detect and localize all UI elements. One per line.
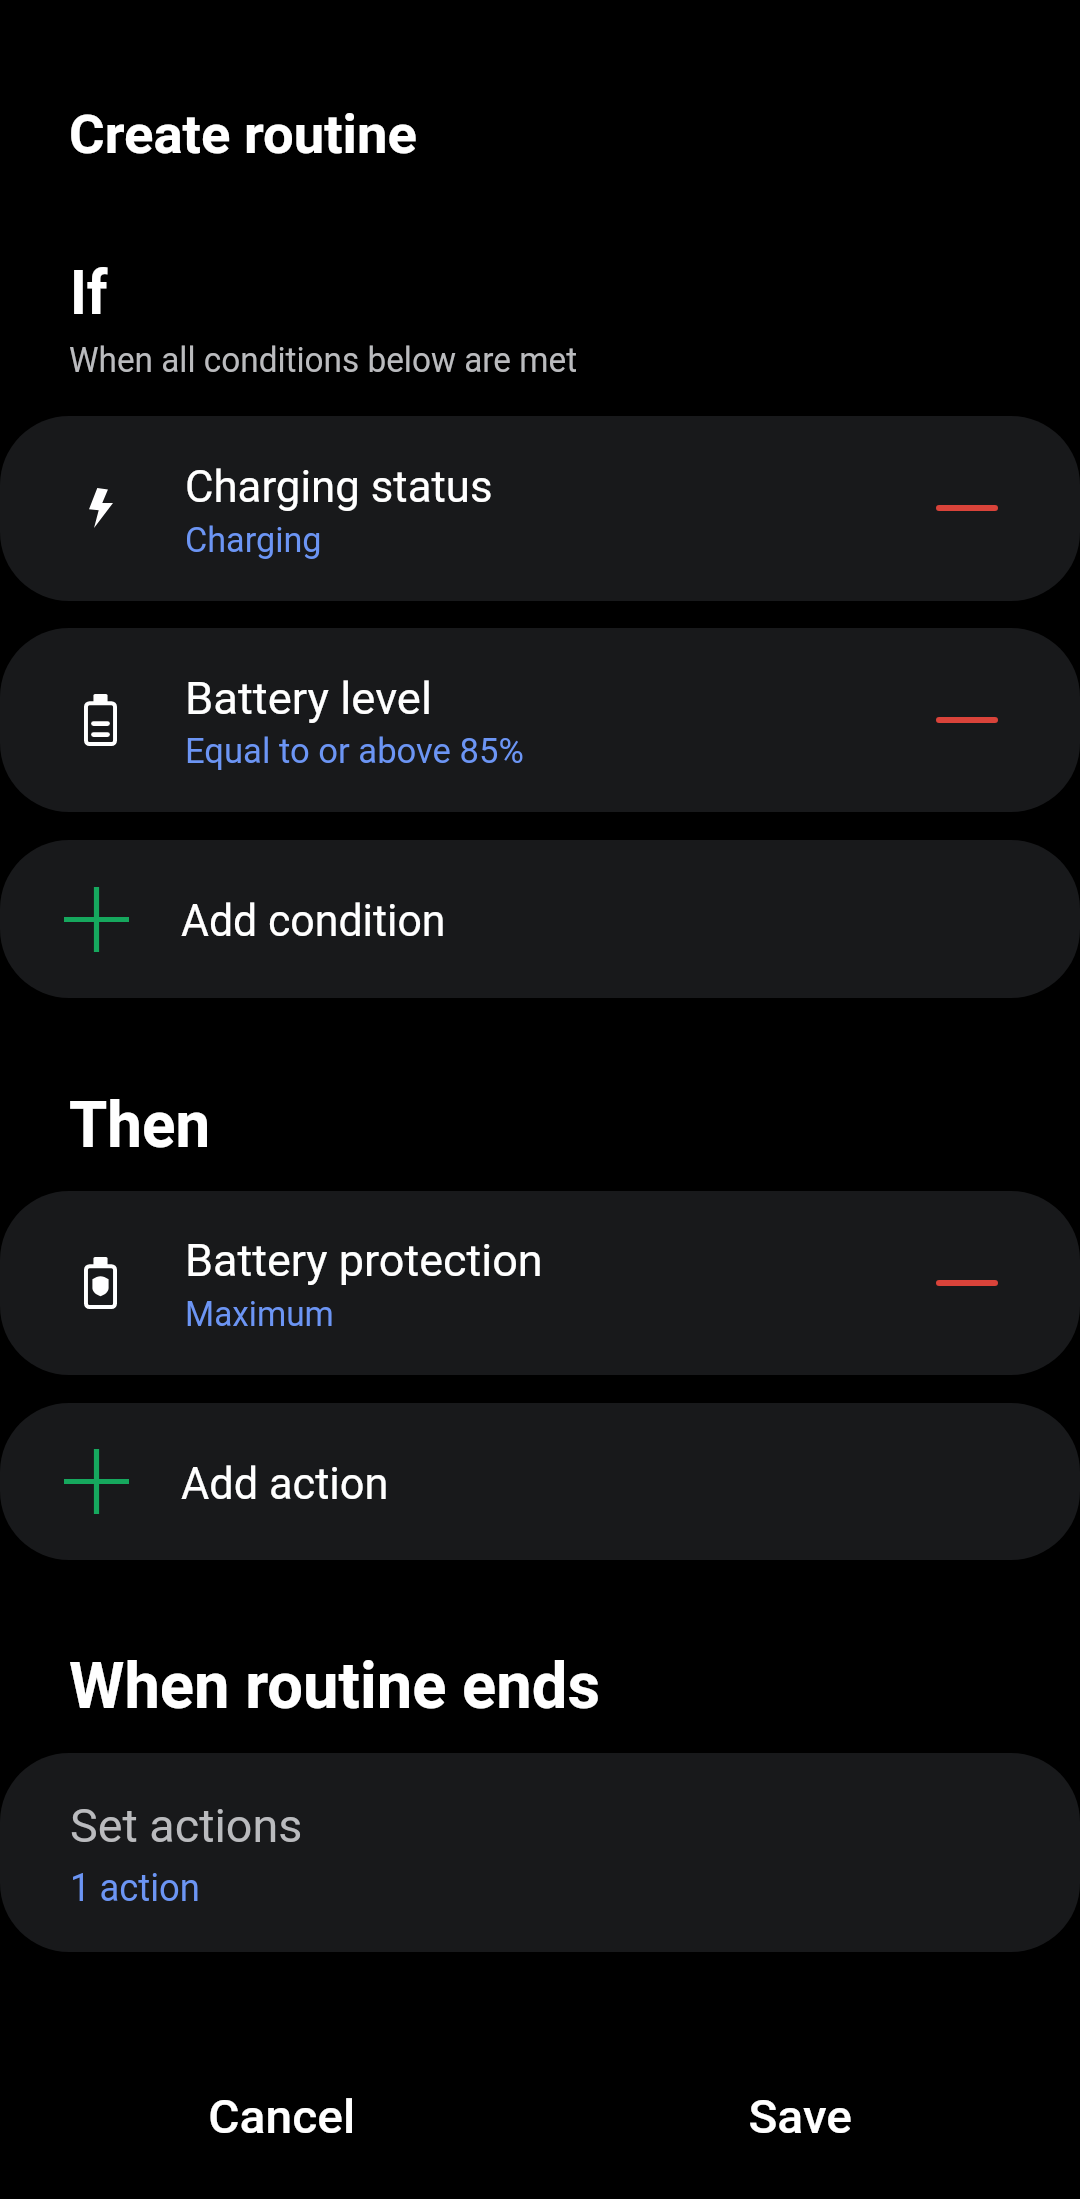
staticText: Equal to or above 85%	[185, 724, 524, 773]
staticText: Battery level	[185, 666, 432, 727]
button[interactable]: Remove	[927, 1243, 1007, 1323]
button[interactable]: Remove	[927, 680, 1007, 760]
staticText: Charging	[185, 513, 322, 562]
button[interactable]: Battery protection	[0, 1191, 1080, 1375]
staticText: Maximum	[185, 1287, 334, 1336]
staticText: Create routine	[69, 96, 417, 168]
button[interactable]: Charging status	[0, 416, 1080, 601]
staticText: 1 action	[70, 1859, 200, 1912]
button[interactable]: Set actions	[0, 1753, 1080, 1952]
button[interactable]: Remove	[927, 468, 1007, 548]
button[interactable]: Add condition	[0, 840, 1080, 998]
staticText: Add condition	[181, 888, 446, 949]
button[interactable]: Cancel	[112, 2029, 452, 2199]
staticText: Add action	[181, 1451, 389, 1512]
staticText: Save	[748, 2084, 852, 2146]
staticText: Charging status	[185, 454, 493, 515]
button[interactable]: Save	[630, 2029, 970, 2199]
staticText: Cancel	[208, 2084, 356, 2146]
staticText: When all conditions below are met	[69, 334, 578, 382]
staticText: If	[70, 247, 108, 331]
staticText: When routine ends	[69, 1638, 600, 1727]
staticText: Then	[69, 1077, 210, 1165]
button[interactable]: Add action	[0, 1403, 1080, 1560]
staticText: Set actions	[70, 1793, 303, 1855]
button[interactable]: Battery level	[0, 628, 1080, 812]
staticText: Battery protection	[185, 1228, 543, 1289]
